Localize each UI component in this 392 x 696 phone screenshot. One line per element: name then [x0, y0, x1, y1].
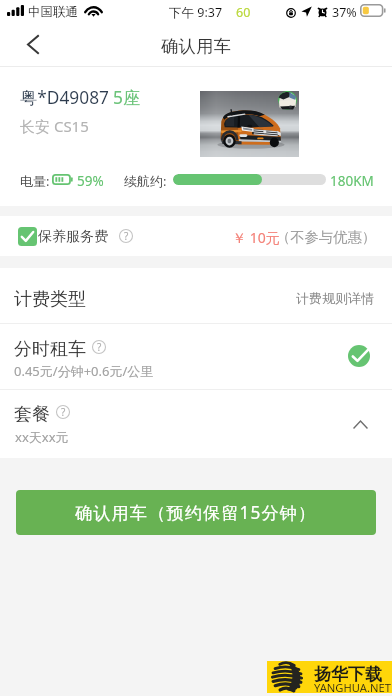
staticText: 套餐: [14, 403, 50, 426]
staticText: ?: [124, 229, 129, 243]
staticText: 180KM: [330, 172, 374, 190]
staticText: 下午 9:37: [169, 4, 223, 21]
staticText: 确认用车（预约保留15分钟）: [75, 501, 317, 524]
staticText: 60: [236, 4, 251, 21]
button[interactable]: 确认用车（预约保留15分钟）: [16, 490, 376, 535]
button[interactable]: 计费规则详情: [296, 290, 374, 306]
staticText: 扬华下载: [314, 664, 382, 685]
staticText: 5座: [113, 86, 141, 110]
staticText: 计费类型: [14, 288, 86, 311]
staticText: 分时租车: [14, 338, 86, 361]
staticText: 中国联通: [28, 4, 78, 20]
staticText: 粤*D49087: [20, 86, 109, 110]
button[interactable]: 套餐: [0, 390, 392, 458]
staticText: 0.45元/分钟+0.6元/公里: [14, 362, 154, 380]
staticText: 电量:: [20, 172, 50, 190]
staticText: （不参与优惠）: [276, 228, 377, 246]
button[interactable]: 分时租车: [0, 324, 392, 389]
staticText: 长安 CS15: [20, 116, 89, 136]
staticText: ?: [97, 340, 102, 354]
button[interactable]: Back: [0, 26, 56, 66]
staticText: 37%: [332, 4, 357, 21]
staticText: ￥ 10元: [232, 228, 280, 247]
other: Collapse: [350, 412, 370, 432]
staticText: ?: [61, 405, 66, 419]
staticText: YANGHUA.NET: [314, 680, 391, 695]
staticText: 保养服务费: [38, 228, 108, 246]
staticText: 计费规则详情: [296, 290, 374, 306]
staticText: 确认用车: [161, 35, 232, 57]
staticText: 59%: [77, 172, 104, 190]
staticText: 续航约:: [124, 172, 167, 190]
button[interactable]: 保养服务费: [0, 216, 392, 256]
staticText: xx天xx元: [15, 428, 69, 446]
